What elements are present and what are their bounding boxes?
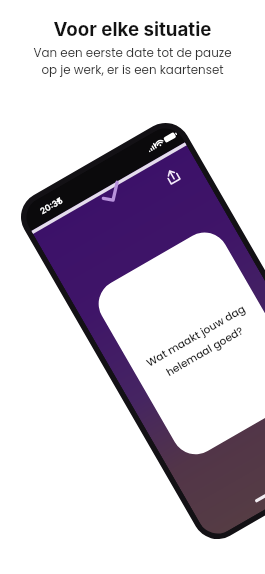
- button[interactable]: Voor elke situatie: [0, 0, 265, 574]
